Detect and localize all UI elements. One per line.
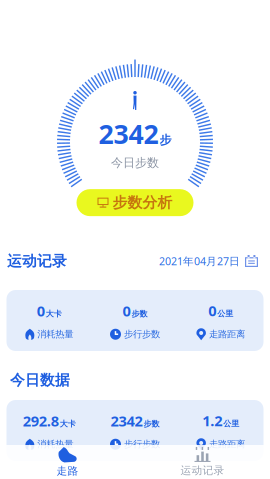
staticText: 步数: [131, 309, 147, 319]
staticText: 走路距离: [209, 438, 245, 450]
staticText: 步数: [143, 419, 159, 429]
staticText: 2342: [98, 116, 158, 151]
staticText: 消耗热量: [37, 438, 73, 450]
staticText: 走路: [56, 464, 78, 477]
staticText: 公里: [217, 309, 233, 318]
staticText: 0: [37, 301, 45, 320]
button[interactable]: 走路: [0, 445, 135, 479]
staticText: 2021年04月27日: [159, 254, 240, 268]
staticText: 今日步数: [111, 155, 159, 170]
staticText: 运动记录: [7, 252, 67, 270]
staticText: 0: [208, 301, 216, 320]
staticText: 292.8: [23, 411, 59, 430]
staticText: 大卡: [60, 419, 76, 429]
staticText: 1.2: [202, 411, 222, 430]
staticText: 公里: [223, 419, 239, 428]
staticText: 今日数据: [10, 371, 70, 389]
staticText: 0: [122, 301, 130, 320]
button[interactable]: 运动记录: [135, 445, 270, 479]
staticText: 步行步数: [124, 438, 160, 450]
staticText: 消耗热量: [37, 328, 73, 340]
staticText: 步数分析: [112, 194, 172, 212]
staticText: 运动记录: [180, 464, 224, 477]
staticText: 2342: [110, 411, 142, 430]
staticText: 步行步数: [124, 328, 160, 340]
button[interactable]: 2021年04月27日: [159, 254, 263, 268]
staticText: 步: [159, 133, 171, 147]
staticText: 大卡: [46, 309, 62, 319]
button[interactable]: 步数分析: [76, 189, 193, 216]
staticText: 走路距离: [209, 328, 245, 340]
